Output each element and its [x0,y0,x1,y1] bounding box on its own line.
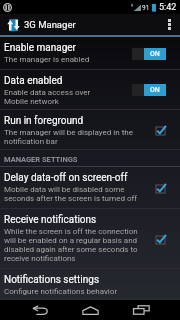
staticText: While the screen is off the connection w… [4,227,138,263]
staticText: 5:42 [159,2,177,13]
staticText: Notifications settings [4,274,100,286]
button[interactable]: More options [162,14,176,35]
button[interactable]: Home [66,300,114,320]
staticText: Receive notifications [4,214,97,226]
button[interactable]: Notifications settings [0,269,180,300]
staticText: ON [150,86,160,94]
staticText: Enable data access over Mobile network [4,88,91,106]
button[interactable]: Data enabled [0,70,180,110]
staticText: Configure notifications behavior [4,287,118,296]
staticText: The manager will be displayed in the not… [4,128,133,146]
staticText: 3G Manager [24,19,76,30]
staticText: The manager is enabled [4,55,90,64]
button[interactable]: Enable manager [0,37,180,70]
button[interactable]: Recent apps [117,300,165,320]
staticText: Data enabled [4,75,63,87]
staticText: MANAGER SETTINGS [4,155,78,164]
staticText: Delay data-off on screen-off [4,172,128,184]
button[interactable]: Receive notifications [0,209,180,269]
staticText: 91 [142,4,150,12]
staticText: Enable manager [4,42,76,54]
button[interactable]: Run in foreground [0,110,180,150]
button[interactable]: Back [12,300,68,320]
button[interactable]: Delay data-off on screen-off [0,167,180,209]
staticText: ON [150,50,160,58]
staticText: Run in foreground [4,115,84,127]
staticText: Mobile data will be disabled some second… [4,185,138,203]
